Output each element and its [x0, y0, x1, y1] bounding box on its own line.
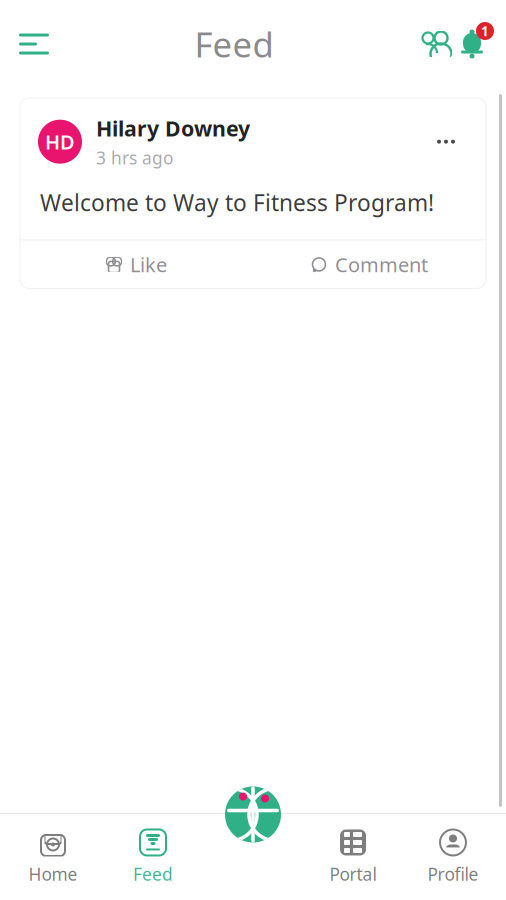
staticText: Welcome to Way to Fitness Program!: [40, 187, 434, 217]
button[interactable]: Home: [3, 821, 103, 893]
staticText: Hilary Downey: [96, 114, 250, 142]
staticText: Comment: [335, 251, 428, 278]
button[interactable]: Notifications: [452, 24, 506, 64]
button[interactable]: More options: [424, 120, 468, 164]
button[interactable]: Comment: [253, 240, 486, 288]
button[interactable]: Activity: [225, 786, 281, 842]
staticText: Like: [130, 251, 167, 278]
staticText: 3 hrs ago: [96, 146, 173, 169]
button[interactable]: Profile: [403, 821, 503, 893]
button[interactable]: Menu: [0, 20, 50, 68]
staticText: Feed: [133, 862, 173, 885]
staticText: Home: [28, 862, 77, 885]
staticText: Portal: [329, 862, 376, 885]
button[interactable]: Like: [20, 240, 253, 288]
button[interactable]: Feed: [103, 821, 203, 893]
staticText: Profile: [427, 862, 478, 885]
staticText: 1: [481, 22, 489, 40]
button[interactable]: Portal: [303, 821, 403, 893]
button[interactable]: Friends: [418, 19, 452, 69]
staticText: Feed: [194, 21, 273, 67]
staticText: HD: [45, 128, 75, 155]
